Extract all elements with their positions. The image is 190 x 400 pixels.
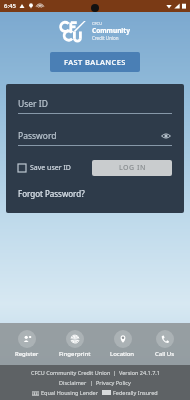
- staticText: Call Us: [155, 350, 175, 358]
- button[interactable]: Location: [106, 328, 139, 360]
- staticText: FAST BALANCES: [64, 57, 126, 67]
- staticText: Password: [18, 130, 57, 142]
- staticText: Equal Housing Lender: [41, 389, 98, 396]
- staticText: Federally Insured: [113, 389, 158, 396]
- button[interactable]: FAST BALANCES: [50, 52, 140, 72]
- staticText: Location: [110, 350, 135, 358]
- button[interactable]: Privacy Policy: [96, 379, 131, 386]
- staticText: Disclaimer: [59, 379, 87, 386]
- button[interactable]: Fingerprint: [55, 328, 95, 360]
- staticText: Save user ID: [30, 163, 71, 173]
- staticText: Community: [92, 26, 130, 35]
- button[interactable]: Show password: [160, 130, 172, 142]
- staticText: CFCU: [92, 21, 103, 26]
- staticText: |: [87, 379, 96, 386]
- staticText: CFCU Community Credit Union | Version 24…: [31, 369, 160, 376]
- staticText: Forgot Password?: [18, 188, 85, 199]
- button[interactable]: Forgot Password?: [18, 188, 85, 199]
- staticText: LOG IN: [119, 163, 146, 173]
- staticText: Credit Union: [92, 35, 119, 41]
- staticText: Fingerprint: [59, 350, 91, 358]
- button[interactable]: Save user ID: [18, 163, 71, 173]
- button[interactable]: Disclaimer: [59, 379, 87, 386]
- button[interactable]: LOG IN: [92, 160, 172, 176]
- staticText: User ID: [18, 98, 48, 110]
- button[interactable]: Register: [11, 328, 43, 360]
- staticText: Privacy Policy: [96, 379, 131, 386]
- staticText: 6:45: [4, 2, 16, 10]
- button[interactable]: Call Us: [151, 328, 179, 360]
- staticText: Register: [15, 350, 39, 358]
